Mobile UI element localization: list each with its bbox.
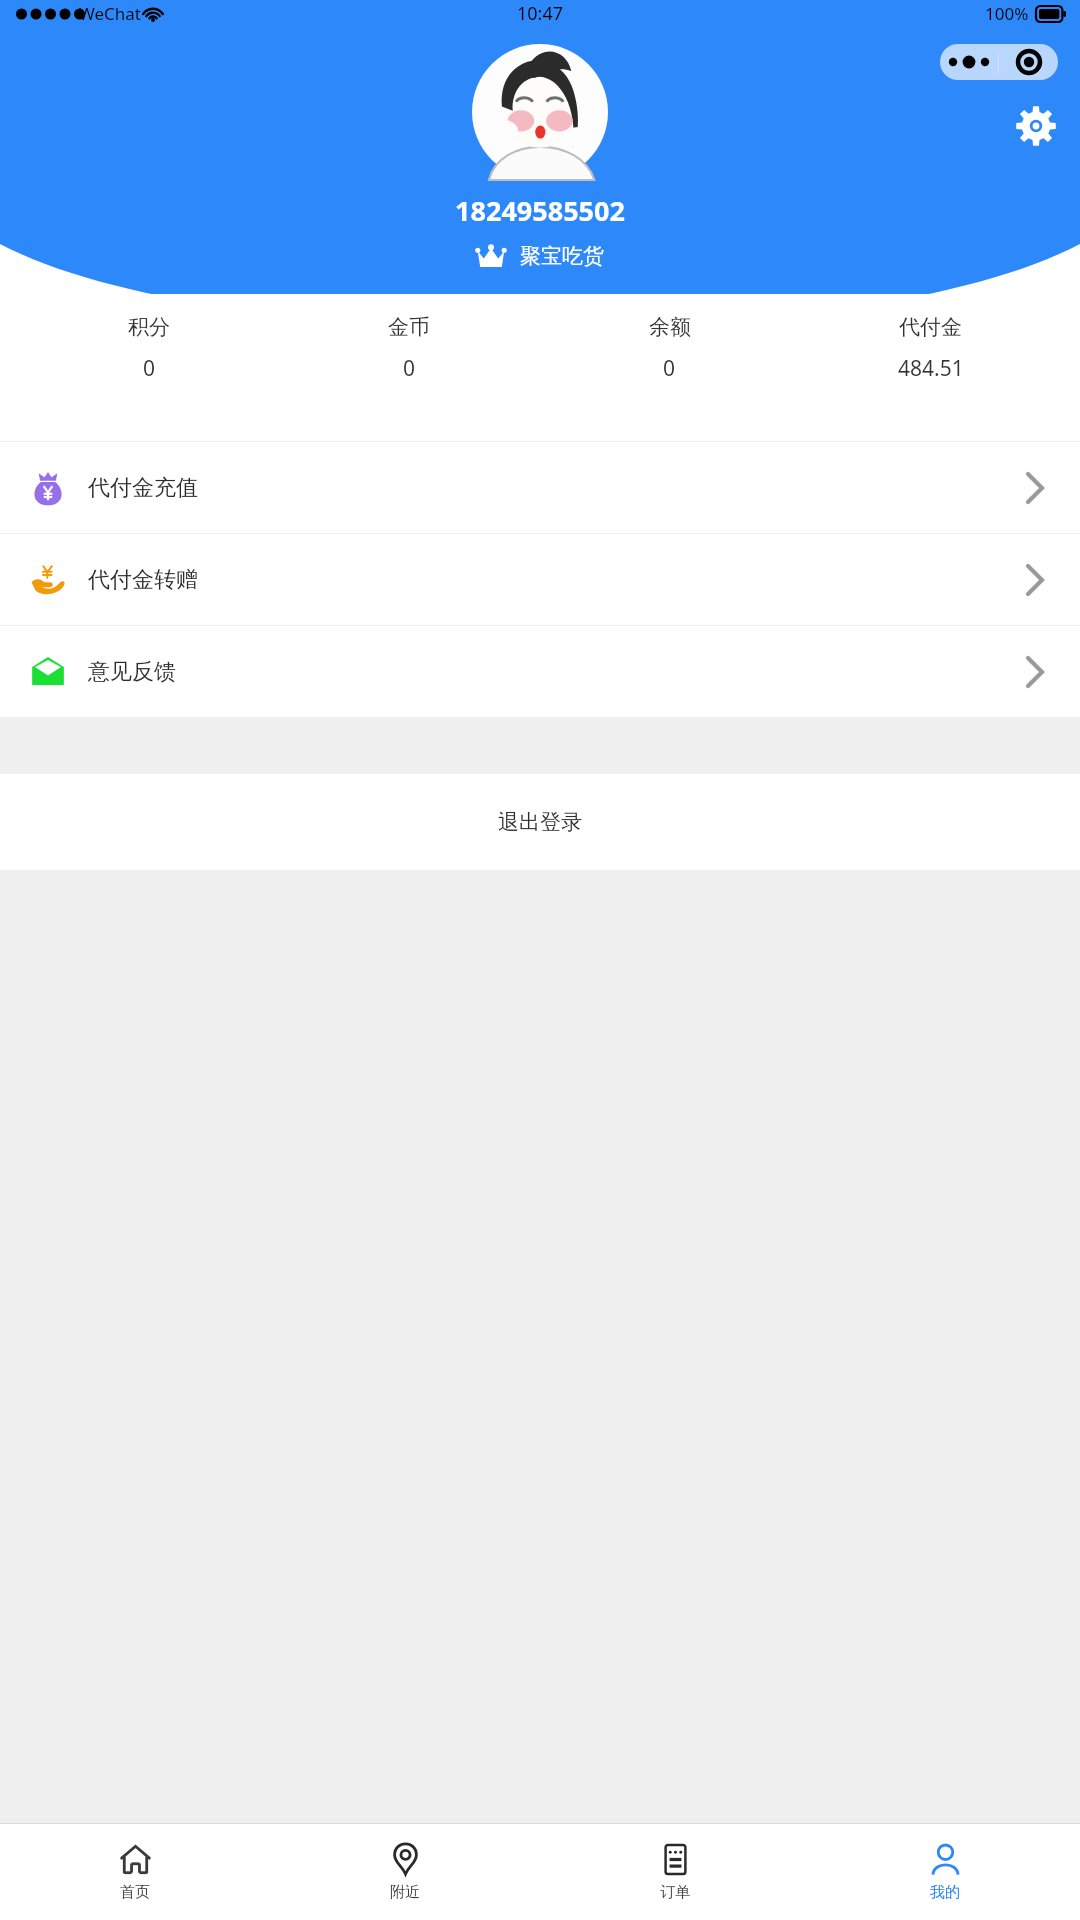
button[interactable]: 我的收藏 [0,350,1080,441]
staticText: 我的 [930,1883,960,1902]
staticText: 意见反馈 [88,658,176,686]
staticText: 代付金充值 [88,474,198,502]
staticText: 0 [143,354,156,383]
button[interactable]: 附近 [270,1824,540,1920]
button[interactable]: Settings [1014,104,1058,148]
button[interactable]: 订单 [540,1824,810,1920]
button[interactable]: 代付金充值 [0,442,1080,533]
staticText: 退出登录 [498,809,582,835]
button[interactable]: 我的 [810,1824,1080,1920]
staticText: 代付金转赠 [88,566,198,594]
button[interactable]: 退出登录 [0,774,1080,870]
button[interactable]: 首页 [0,1824,270,1920]
staticText: 484.51 [898,354,964,383]
staticText: 聚宝吃货 [520,243,604,269]
staticText: 余额 [649,314,691,340]
staticText: 0 [403,354,416,383]
staticText: 代付金 [899,314,962,340]
staticText: 附近 [390,1883,420,1902]
staticText: 首页 [120,1883,150,1902]
button[interactable]: Close [999,44,1058,80]
staticText: WeChat [79,2,141,25]
staticText: 订单 [660,1883,690,1902]
staticText: 18249585502 [0,192,1080,229]
staticText: 积分 [128,314,170,340]
button[interactable]: 代付金转赠 [0,534,1080,625]
staticText: 金币 [388,314,430,340]
staticText: 10:47 [517,1,564,26]
button[interactable]: More [940,44,998,80]
staticText: 0 [663,354,676,383]
staticText: 100% [985,2,1029,25]
button[interactable]: 意见反馈 [0,626,1080,717]
